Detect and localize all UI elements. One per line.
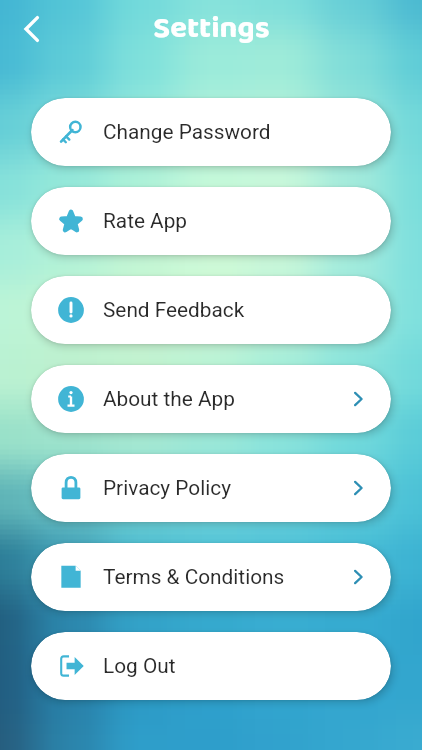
staticText: Privacy Policy xyxy=(103,476,232,500)
button[interactable]: Back xyxy=(12,9,52,49)
staticText: Settings xyxy=(153,4,270,54)
button[interactable]: Rate App xyxy=(31,187,391,255)
button[interactable]: Log Out xyxy=(31,632,391,700)
staticText: Change Password xyxy=(103,120,271,144)
staticText: Log Out xyxy=(103,654,176,678)
button[interactable]: Privacy Policy xyxy=(31,454,391,522)
button[interactable]: Change Password xyxy=(31,98,391,166)
staticText: Terms & Conditions xyxy=(103,565,285,589)
staticText: Send Feedback xyxy=(103,298,245,322)
button[interactable]: About the App xyxy=(31,365,391,433)
button[interactable]: Terms & Conditions xyxy=(31,543,391,611)
staticText: Rate App xyxy=(103,209,188,233)
staticText: About the App xyxy=(103,387,235,411)
button[interactable]: Send Feedback xyxy=(31,276,391,344)
